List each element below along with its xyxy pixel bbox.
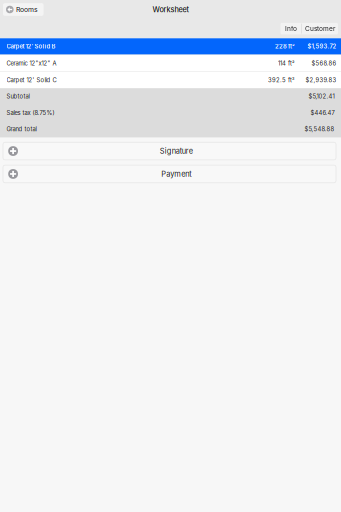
staticText: Signature — [160, 146, 193, 155]
button[interactable]: Payment — [3, 165, 336, 183]
button[interactable]: Rooms — [3, 3, 44, 16]
staticText: $446.47 — [310, 109, 334, 116]
button[interactable]: Carpet 12' Solid B — [0, 38, 341, 55]
staticText: Customer — [305, 25, 335, 33]
staticText: Payment — [161, 169, 191, 178]
staticText: Carpet 12' Solid C — [6, 76, 56, 84]
button[interactable]: Signature — [3, 142, 336, 160]
staticText: Grand total — [6, 126, 36, 133]
staticText: 114 ft² — [278, 60, 295, 67]
staticText: $2,939.83 — [305, 76, 336, 84]
button[interactable]: Carpet 12' Solid C — [0, 72, 341, 88]
staticText: Sales tax (8.75%) — [6, 109, 54, 116]
staticText: Carpet 12' Solid B — [6, 43, 55, 50]
staticText: 392.5 ft² — [268, 76, 295, 84]
button[interactable]: Customer — [302, 23, 338, 34]
staticText: $5,548.88 — [304, 126, 334, 133]
staticText: Subtotal — [6, 93, 29, 100]
staticText: $5,102.41 — [308, 93, 334, 100]
button[interactable]: Info — [280, 23, 301, 34]
staticText: Info — [285, 25, 297, 33]
button[interactable]: Ceramic 12"x12" A — [0, 55, 341, 71]
staticText: Ceramic 12"x12" A — [6, 60, 56, 67]
staticText: 228 ft² — [275, 43, 295, 50]
staticText: Worksheet — [152, 5, 188, 14]
staticText: Rooms — [16, 5, 38, 14]
staticText: $1,593.72 — [307, 43, 336, 50]
staticText: $568.86 — [311, 60, 336, 67]
